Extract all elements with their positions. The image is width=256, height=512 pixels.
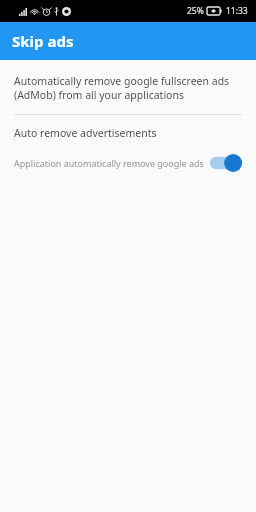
staticText: Application automatically remove google … [14, 157, 204, 169]
staticText: 11:33 [226, 5, 248, 17]
staticText: Auto remove advertisements [14, 126, 157, 140]
staticText: Automatically remove google fullscreen a… [14, 74, 232, 102]
button[interactable]: Auto remove advertisements toggle [210, 153, 244, 173]
staticText: 25% [187, 5, 204, 17]
button[interactable]: Application automatically remove google … [0, 150, 256, 176]
staticText: Skip ads [12, 31, 74, 51]
